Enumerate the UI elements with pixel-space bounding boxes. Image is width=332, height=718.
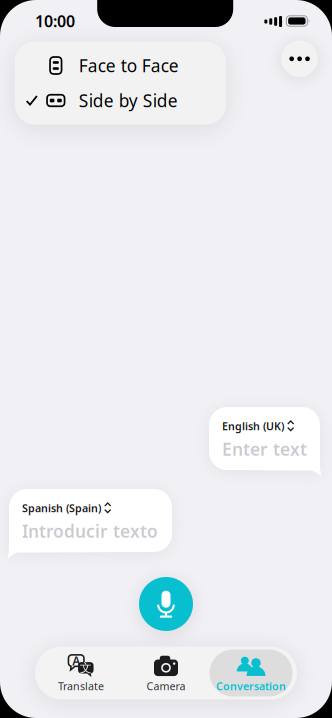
button[interactable]: Camera [123,646,208,699]
staticText: Spanish (Spain) [22,501,101,515]
staticText: Conversation [216,679,286,693]
button[interactable]: Start recording [139,577,193,631]
button[interactable]: Spanish (Spain) [9,489,172,559]
staticText: Camera [146,679,185,693]
staticText: Translate [58,679,104,693]
button[interactable]: Face to Face [15,48,226,83]
button[interactable]: English (UK) [209,407,320,477]
button[interactable]: Side by Side [15,83,226,118]
staticText: English (UK) [222,419,284,433]
staticText: 文 [80,661,92,675]
staticText: Introducir texto [22,519,158,542]
button[interactable]: More options [281,40,318,77]
button[interactable]: Conversation [208,646,293,699]
staticText: A [72,653,80,669]
staticText: 10:00 [35,10,75,32]
staticText: Side by Side [79,89,178,112]
staticText: Enter text [222,437,307,460]
staticText: Face to Face [79,54,179,77]
button[interactable]: A [38,646,123,699]
